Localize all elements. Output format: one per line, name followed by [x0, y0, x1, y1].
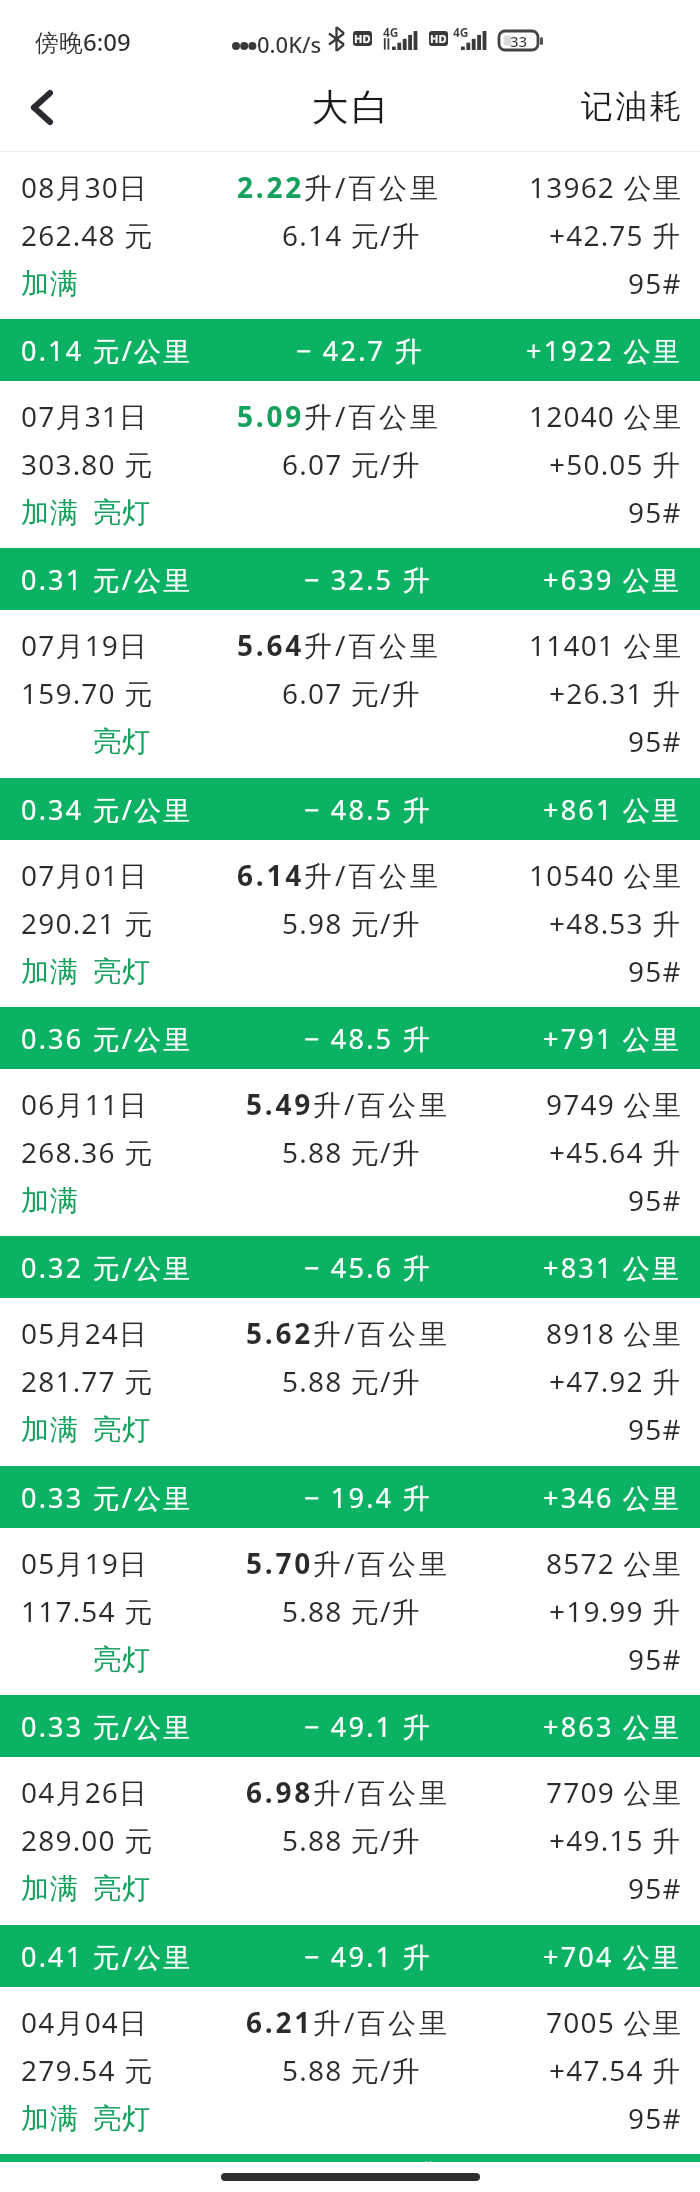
staticText: 加满 [21, 1412, 80, 1447]
staticText: 0.36 元/公里 [21, 1020, 193, 1057]
staticText: 5.88 元/升 [282, 1133, 421, 1171]
staticText: +49.15 升 [549, 1821, 682, 1859]
staticText: +346 公里 [543, 1479, 682, 1516]
button[interactable]: 07月19日 [0, 610, 700, 778]
staticText: 加满 [21, 1183, 80, 1218]
staticText: 大白 [310, 84, 390, 131]
button[interactable]: 07月31日 [0, 381, 700, 548]
staticText: 5.88 元/升 [282, 1362, 421, 1400]
staticText: 5.49升/百公里 [246, 1085, 450, 1123]
staticText: − 49.1 升 [304, 1708, 432, 1745]
staticText: 05月24日 [21, 1314, 149, 1352]
staticText: 303.80 元 [21, 445, 154, 483]
staticText: 0.33 元/公里 [21, 1708, 193, 1745]
button[interactable]: 05月24日 [0, 1298, 700, 1466]
button[interactable]: Back [0, 70, 72, 152]
staticText: 33 [510, 31, 528, 50]
staticText: 04月04日 [21, 2003, 149, 2041]
staticText: 6.14升/百公里 [237, 856, 441, 894]
staticText: +1922 公里 [526, 332, 682, 369]
staticText: 0.34 元/公里 [21, 791, 193, 828]
staticText: 08月30日 [21, 168, 149, 206]
staticText: 0.00 元/公里 [21, 2155, 193, 2192]
staticText: 95# [628, 1869, 682, 1907]
staticText: 95# [628, 722, 682, 760]
staticText: 亮灯 [93, 724, 152, 759]
button[interactable]: 0.33 元/公里 [0, 1466, 700, 1528]
staticText: +48.53 升 [549, 904, 682, 942]
staticText: 95# [628, 1181, 682, 1219]
staticText: 95# [628, 952, 682, 990]
staticText: +831 公里 [543, 1249, 682, 1286]
staticText: 13962 公里 [529, 168, 682, 206]
staticText: 加满 [21, 954, 80, 989]
staticText: 5.09升/百公里 [237, 397, 441, 435]
staticText: +639 公里 [543, 561, 682, 598]
staticText: 5.98 元/升 [282, 904, 421, 942]
staticText: 05月19日 [21, 1544, 149, 1582]
staticText: 0.32 元/公里 [21, 1249, 193, 1286]
button[interactable]: 04月26日 [0, 1757, 700, 1925]
staticText: − 49.1 升 [304, 1938, 432, 1975]
staticText: 12040 公里 [529, 397, 682, 435]
staticText: 6.07 元/升 [282, 445, 421, 483]
staticText: +47.92 升 [549, 1362, 682, 1400]
staticText: 0.33 元/公里 [21, 1479, 193, 1516]
button[interactable]: 04月04日 [0, 1987, 700, 2154]
button[interactable]: 0.33 元/公里 [0, 1695, 700, 1757]
staticText: 亮灯 [93, 954, 152, 989]
staticText: 5.88 元/升 [282, 1592, 421, 1630]
staticText: 95# [628, 2099, 682, 2137]
staticText: 5.70升/百公里 [246, 1544, 450, 1582]
staticText: 5.62升/百公里 [246, 1314, 450, 1352]
staticText: 2.22升/百公里 [237, 168, 441, 206]
staticText: 加满 [21, 2101, 80, 2136]
staticText: 0.41 元/公里 [21, 1938, 193, 1975]
button[interactable]: 0.14 元/公里 [0, 319, 700, 381]
button[interactable]: 0.41 元/公里 [0, 1925, 700, 1987]
staticText: 0.14 元/公里 [21, 332, 193, 369]
staticText: 加满 [21, 266, 80, 301]
staticText: 11401 公里 [529, 626, 682, 664]
button[interactable]: 0.32 元/公里 [0, 1236, 700, 1298]
staticText: 亮灯 [93, 1412, 152, 1447]
button[interactable]: 0.34 元/公里 [0, 778, 700, 840]
staticText: +704 公里 [543, 1938, 682, 1975]
button[interactable]: 05月19日 [0, 1528, 700, 1695]
staticText: +47.54 升 [549, 2051, 682, 2089]
staticText: 亮灯 [93, 1871, 152, 1906]
staticText: 4G [383, 24, 399, 40]
button[interactable]: 08月30日 [0, 152, 700, 319]
staticText: 记油耗 [581, 86, 684, 126]
staticText: − 19.4 升 [304, 1479, 432, 1516]
staticText: +861 公里 [543, 791, 682, 828]
staticText: +0 公里 [579, 2155, 682, 2192]
staticText: 0.31 元/公里 [21, 561, 193, 598]
staticText: 6.14 元/升 [282, 216, 421, 254]
staticText: 07月19日 [21, 626, 149, 664]
button[interactable]: 06月11日 [0, 1069, 700, 1236]
staticText: 5.88 元/升 [282, 2051, 421, 2089]
staticText: +26.31 升 [549, 674, 682, 712]
staticText: 0.0K/s [257, 29, 322, 59]
button[interactable]: 0.00 元/公里 [0, 2154, 700, 2192]
button[interactable]: 07月01日 [0, 840, 700, 1007]
staticText: − 45.6 升 [304, 1249, 432, 1286]
staticText: +42.75 升 [549, 216, 682, 254]
staticText: 加满 [21, 1871, 80, 1906]
staticText: +19.99 升 [549, 1592, 682, 1630]
button[interactable]: 0.31 元/公里 [0, 548, 700, 610]
staticText: 8918 公里 [546, 1314, 682, 1352]
button[interactable]: 记油耗 [525, 70, 700, 152]
staticText: − 32.5 升 [304, 561, 432, 598]
staticText: 07月01日 [21, 856, 149, 894]
staticText: HD [354, 31, 371, 46]
staticText: 117.54 元 [21, 1592, 154, 1630]
staticText: 5.64升/百公里 [237, 626, 441, 664]
staticText: 95# [628, 264, 682, 302]
button[interactable]: 0.36 元/公里 [0, 1007, 700, 1069]
staticText: 10540 公里 [529, 856, 682, 894]
staticText: − 48.5 升 [304, 1020, 432, 1057]
staticText: +50.05 升 [549, 445, 682, 483]
staticText: 279.54 元 [21, 2051, 154, 2089]
